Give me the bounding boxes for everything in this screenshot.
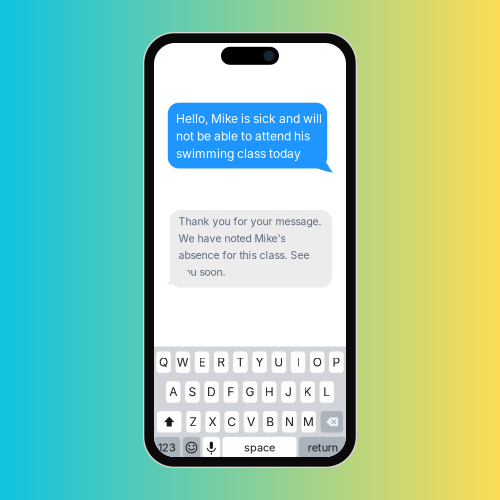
button[interactable]: Delete	[320, 411, 343, 432]
staticText: U	[274, 355, 283, 369]
staticText: Z	[189, 414, 197, 429]
staticText: F	[227, 385, 234, 399]
button[interactable]: Q	[156, 351, 171, 373]
staticText: T	[236, 355, 244, 369]
button[interactable]: J	[281, 381, 296, 403]
staticText: space	[244, 441, 275, 454]
staticText: S	[188, 385, 196, 399]
staticText: V	[247, 414, 255, 429]
staticText: C	[227, 414, 236, 429]
staticText: D	[207, 385, 216, 399]
button[interactable]: M	[301, 411, 316, 432]
button[interactable]: Z	[186, 411, 201, 432]
staticText: L	[323, 385, 330, 399]
staticText: B	[266, 414, 274, 429]
button[interactable]: L	[319, 381, 334, 403]
button[interactable]: C	[224, 411, 239, 432]
button[interactable]: Dictate	[203, 437, 220, 458]
staticText: R	[217, 355, 225, 369]
staticText: P	[332, 355, 340, 369]
staticText: O	[313, 355, 322, 369]
button[interactable]: P	[329, 351, 344, 373]
button[interactable]: D	[204, 381, 219, 403]
button[interactable]: O	[310, 351, 324, 373]
button[interactable]: S	[185, 381, 200, 403]
button[interactable]: G	[243, 381, 257, 403]
button[interactable]: space	[222, 437, 296, 458]
button[interactable]: F	[223, 381, 238, 403]
staticText: G	[245, 385, 254, 399]
button[interactable]: A	[166, 381, 180, 403]
staticText: N	[285, 414, 294, 429]
button[interactable]: U	[272, 351, 286, 373]
button[interactable]: return	[299, 437, 346, 458]
button[interactable]: K	[300, 381, 315, 403]
staticText: 123	[158, 441, 176, 454]
button[interactable]: B	[263, 411, 277, 432]
button[interactable]: Shift	[157, 411, 181, 432]
button[interactable]: N	[282, 411, 297, 432]
staticText: H	[265, 385, 274, 399]
staticText: J	[285, 385, 292, 399]
staticText: X	[209, 414, 217, 429]
staticText: E	[198, 355, 205, 369]
button[interactable]: V	[244, 411, 258, 432]
button[interactable]: Emoji	[183, 437, 200, 458]
staticText: return	[308, 441, 338, 454]
button[interactable]: 123	[153, 437, 180, 458]
button[interactable]: X	[205, 411, 220, 432]
staticText: M	[303, 414, 314, 429]
button[interactable]: I	[291, 351, 305, 373]
staticText: Hello, Mike is sick and will not be able…	[176, 111, 322, 161]
button[interactable]: W	[175, 351, 190, 373]
staticText: Q	[159, 355, 168, 369]
button[interactable]: E	[195, 351, 209, 373]
staticText: Thank you for your message. We have note…	[178, 215, 321, 278]
button[interactable]: H	[262, 381, 276, 403]
staticText: K	[304, 385, 312, 399]
button[interactable]: T	[233, 351, 248, 373]
button[interactable]: R	[214, 351, 228, 373]
button[interactable]: Y	[252, 351, 267, 373]
staticText: Y	[256, 355, 264, 369]
staticText: W	[177, 355, 189, 369]
staticText: A	[169, 385, 177, 399]
staticText: I	[296, 355, 299, 369]
